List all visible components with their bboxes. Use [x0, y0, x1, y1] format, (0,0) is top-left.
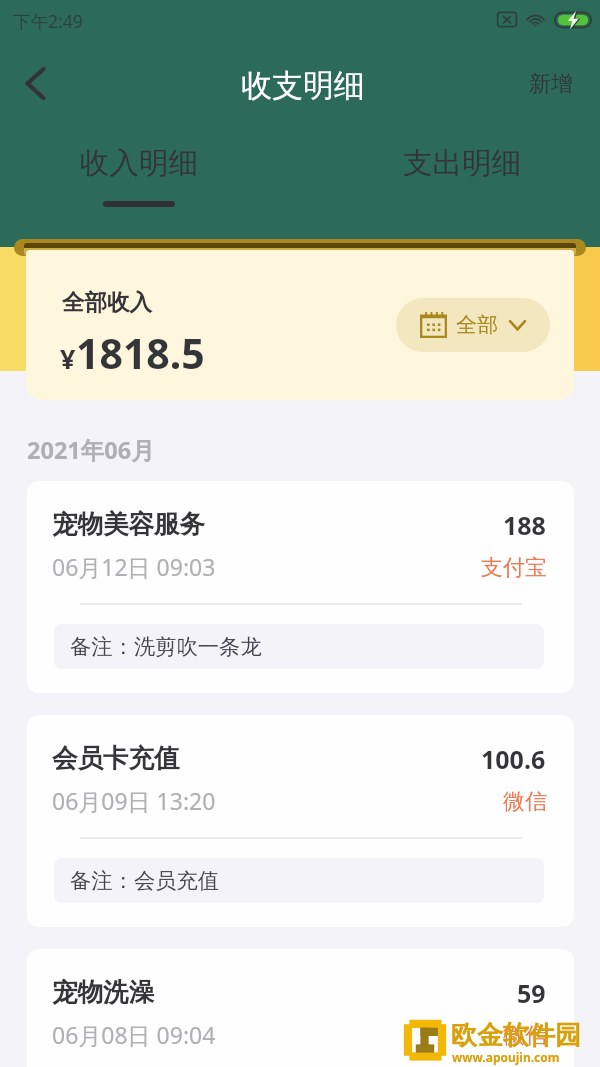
- staticText: www.apoujin.com: [452, 1049, 560, 1065]
- staticText: 06月12日 09:03: [52, 551, 216, 582]
- staticText: 支付宝: [481, 554, 547, 582]
- staticText: 欧金软件园: [451, 1019, 581, 1052]
- button[interactable]: Back: [9, 57, 61, 109]
- staticText: 06月09日 13:20: [52, 785, 216, 816]
- staticText: 新增: [529, 70, 573, 98]
- staticText: 2021年06月: [27, 434, 155, 466]
- staticText: 收支明细: [241, 66, 365, 105]
- staticText: 微信: [503, 1022, 547, 1050]
- staticText: 备注：会员充值: [70, 867, 220, 894]
- button[interactable]: 宠物洗澡: [27, 949, 574, 1067]
- staticText: 微信: [503, 788, 547, 816]
- staticText: 100.6: [481, 742, 546, 776]
- button[interactable]: 收入明细: [59, 145, 219, 217]
- staticText: 59: [517, 976, 546, 1010]
- button[interactable]: 新增: [515, 64, 587, 104]
- button[interactable]: 会员卡充值: [27, 715, 574, 927]
- staticText: 全部收入: [62, 288, 152, 316]
- staticText: 188: [503, 508, 546, 542]
- staticText: 1818.5: [76, 325, 205, 381]
- button[interactable]: 支出明细: [382, 145, 542, 217]
- staticText: 06月08日 09:04: [52, 1019, 216, 1050]
- staticText: 备注：洗剪吹一条龙: [70, 633, 262, 660]
- staticText: ¥: [60, 340, 76, 377]
- staticText: 宠物洗澡: [52, 976, 154, 1008]
- button[interactable]: 全部: [396, 298, 550, 352]
- staticText: 宠物美容服务: [52, 508, 205, 540]
- staticText: 会员卡充值: [52, 742, 180, 774]
- staticText: 下午2:49: [13, 9, 83, 33]
- button[interactable]: 宠物美容服务: [27, 481, 574, 693]
- staticText: 收入明细: [80, 145, 198, 182]
- staticText: 支出明细: [403, 145, 521, 182]
- staticText: 全部: [456, 312, 498, 338]
